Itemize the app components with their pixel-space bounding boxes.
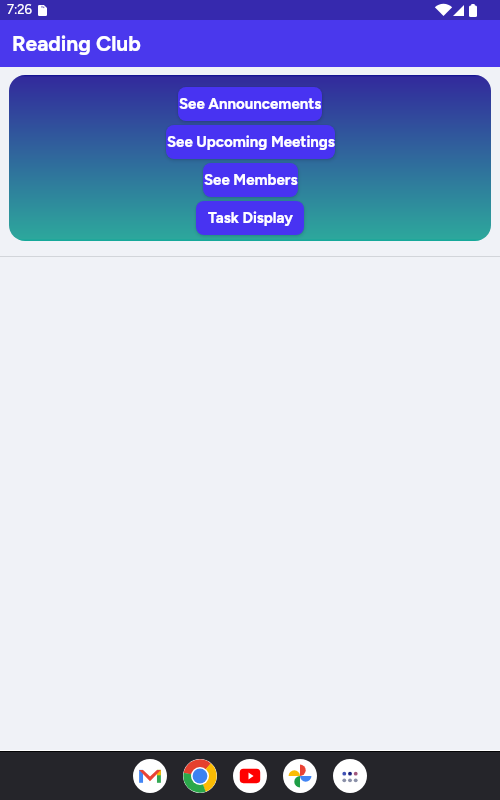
staticText: See Members xyxy=(204,171,298,189)
button[interactable]: See Members xyxy=(203,163,298,197)
staticText: Reading Club xyxy=(12,31,141,56)
button[interactable]: See Announcements xyxy=(178,87,322,121)
button[interactable]: Chrome xyxy=(183,759,217,793)
button[interactable]: Reading Club xyxy=(0,20,500,67)
staticText: Task Display xyxy=(208,209,293,227)
button[interactable]: Photos xyxy=(283,759,317,793)
button[interactable]: See Upcoming Meetings xyxy=(166,125,335,159)
button[interactable]: All apps xyxy=(333,759,367,793)
button[interactable]: Gmail xyxy=(133,759,167,793)
button[interactable]: YouTube xyxy=(233,759,267,793)
button[interactable]: Task Display xyxy=(196,201,304,235)
staticText: 7:26 xyxy=(7,2,32,18)
staticText: See Announcements xyxy=(179,95,322,113)
staticText: See Upcoming Meetings xyxy=(167,133,335,151)
